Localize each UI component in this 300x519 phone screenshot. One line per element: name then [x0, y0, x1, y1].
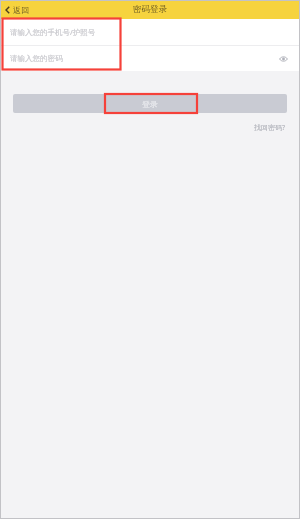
button[interactable]: 返回: [0, 0, 37, 19]
staticText: 登录: [142, 99, 158, 109]
button[interactable]: Show password: [276, 52, 290, 66]
staticText: 请输入您的手机号/护照号: [10, 27, 96, 37]
button[interactable]: 登录: [13, 94, 287, 113]
staticText: 返回: [13, 5, 29, 15]
button[interactable]: 找回密码?: [254, 121, 300, 135]
button[interactable]: 请输入您的密码: [0, 46, 300, 71]
staticText: 请输入您的密码: [10, 54, 63, 63]
staticText: 找回密码?: [254, 123, 286, 133]
staticText: 密码登录: [133, 4, 167, 15]
button[interactable]: 请输入您的手机号/护照号: [0, 19, 300, 45]
